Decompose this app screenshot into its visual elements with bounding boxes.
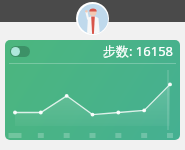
button[interactable]: Profile avatar (76, 2, 109, 35)
staticText: 步数: 16158 (103, 42, 174, 60)
button[interactable]: Toggle step tracking (5, 40, 180, 140)
button[interactable]: Toggle step tracking (10, 46, 30, 57)
